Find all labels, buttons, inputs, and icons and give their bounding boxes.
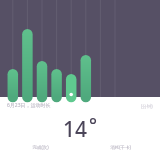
staticText: 消耗(千卡) [110, 144, 131, 150]
button[interactable]: 消耗(千卡) [80, 144, 160, 154]
staticText: 14 [63, 115, 88, 144]
staticText: (分钟) [141, 103, 153, 109]
button[interactable]: Activity chart [0, 0, 160, 97]
button[interactable]: 6月23日，运动时长 [7, 102, 153, 109]
button[interactable]: 完成(次) [0, 144, 80, 154]
staticText: 6月23日，运动时长 [7, 102, 51, 109]
staticText: 完成(次) [32, 144, 49, 150]
